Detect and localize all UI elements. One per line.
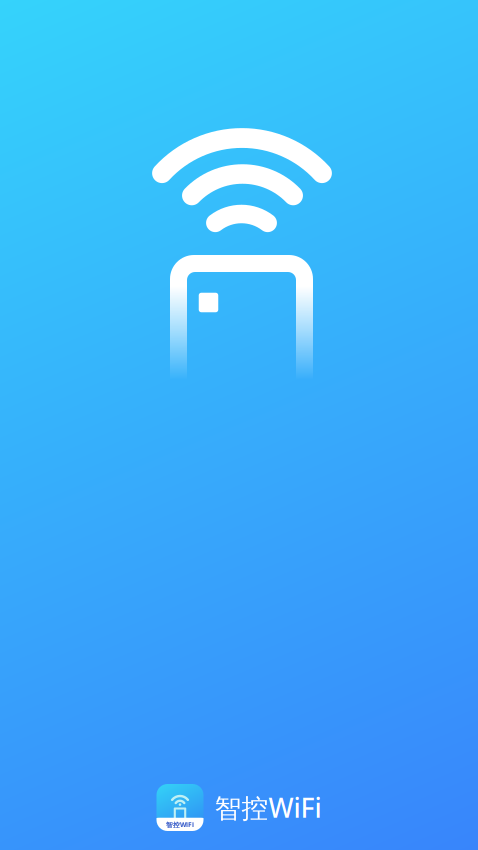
staticText: 智控WiFi xyxy=(214,790,321,825)
staticText: 智控WiFi xyxy=(166,820,194,829)
